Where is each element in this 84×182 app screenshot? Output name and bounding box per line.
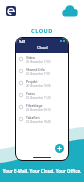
staticText: Video (26, 55, 36, 60)
staticText: Cloud (37, 45, 48, 50)
button[interactable]: Tabellen (16, 113, 68, 125)
button[interactable]: Video (16, 53, 68, 65)
staticText: 23. November 18:40 (26, 120, 51, 124)
staticText: Your E-Mail. Your Cloud. Your Office. (0, 168, 84, 174)
button[interactable]: Cloud (62, 4, 78, 20)
staticText: 25. November 11:20 (26, 96, 51, 100)
staticText: 26. November 17:02 (26, 60, 51, 64)
staticText: Fotos (26, 91, 35, 96)
staticText: 24. November 09:14 (26, 108, 51, 112)
staticText: 9:41 (19, 40, 26, 44)
staticText: Tabellen (26, 115, 40, 120)
button[interactable]: Projekt (16, 77, 68, 89)
button[interactable]: Fotos (16, 89, 68, 101)
button[interactable]: Shared Info (16, 65, 68, 77)
staticText: CLOUD (0, 27, 84, 35)
staticText: Projekt (26, 79, 38, 84)
button[interactable]: New item (55, 144, 64, 153)
staticText: 26. November 17:01 (26, 72, 51, 76)
button[interactable]: Fileablage (16, 101, 68, 113)
button[interactable]: App logo (6, 6, 16, 16)
staticText: Fileablage (26, 103, 43, 108)
staticText: 26. November 16:58 (26, 84, 51, 88)
staticText: Shared Info (26, 67, 45, 72)
